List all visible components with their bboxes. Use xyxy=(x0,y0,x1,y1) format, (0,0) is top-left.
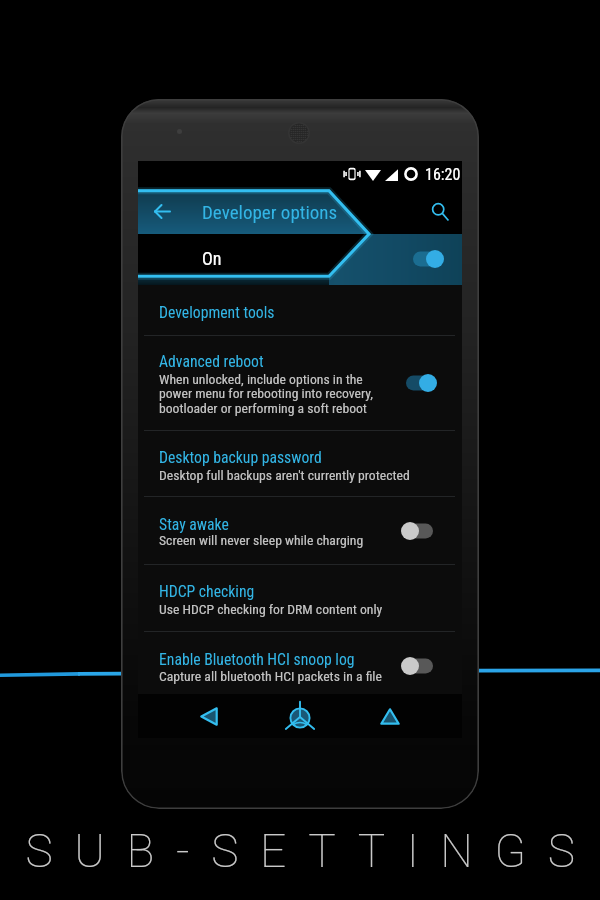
button[interactable]: Advanced reboot xyxy=(138,348,462,374)
staticText: SUB-SETTINGS xyxy=(11,824,600,878)
button[interactable]: On xyxy=(138,234,462,279)
staticText: On xyxy=(202,248,222,269)
button[interactable]: Desktop backup password xyxy=(138,444,462,470)
staticText: Desktop backup password xyxy=(159,448,322,466)
staticText: Screen will never sleep while charging xyxy=(159,532,364,548)
staticText: Developer options xyxy=(202,201,338,223)
button[interactable]: Search xyxy=(418,189,462,234)
staticText: 16:20 xyxy=(425,165,461,184)
staticText: Capture all bluetooth HCI packets in a f… xyxy=(159,668,382,684)
staticText: Use HDCP checking for DRM content only xyxy=(159,601,383,617)
button[interactable]: Development tools xyxy=(138,299,462,325)
button[interactable]: Toggle stay awake xyxy=(401,522,437,540)
button[interactable]: Enable Bluetooth HCI snoop log xyxy=(138,646,462,672)
button[interactable]: Toggle advanced reboot xyxy=(401,374,437,392)
staticText: Enable Bluetooth HCI snoop log xyxy=(159,650,355,668)
button[interactable]: Back xyxy=(178,694,240,738)
button[interactable]: Home xyxy=(269,694,331,738)
button[interactable]: Toggle developer options xyxy=(408,250,444,268)
staticText: Advanced reboot xyxy=(159,352,264,370)
staticText: bootloader or performing a soft reboot xyxy=(159,400,367,416)
staticText: Development tools xyxy=(159,303,275,321)
staticText: power menu for rebooting into recovery, xyxy=(159,385,373,401)
button[interactable]: HDCP checking xyxy=(138,578,462,604)
button[interactable]: Stay awake xyxy=(138,511,462,537)
button[interactable]: Toggle bluetooth HCI snoop log xyxy=(401,657,437,675)
staticText: Stay awake xyxy=(159,515,229,533)
staticText: HDCP checking xyxy=(159,582,255,600)
button[interactable]: Recent apps xyxy=(359,694,421,738)
staticText: Desktop full backups aren't currently pr… xyxy=(159,467,410,483)
button[interactable]: Back xyxy=(138,189,186,234)
staticText: When unlocked, include options in the xyxy=(159,371,363,387)
